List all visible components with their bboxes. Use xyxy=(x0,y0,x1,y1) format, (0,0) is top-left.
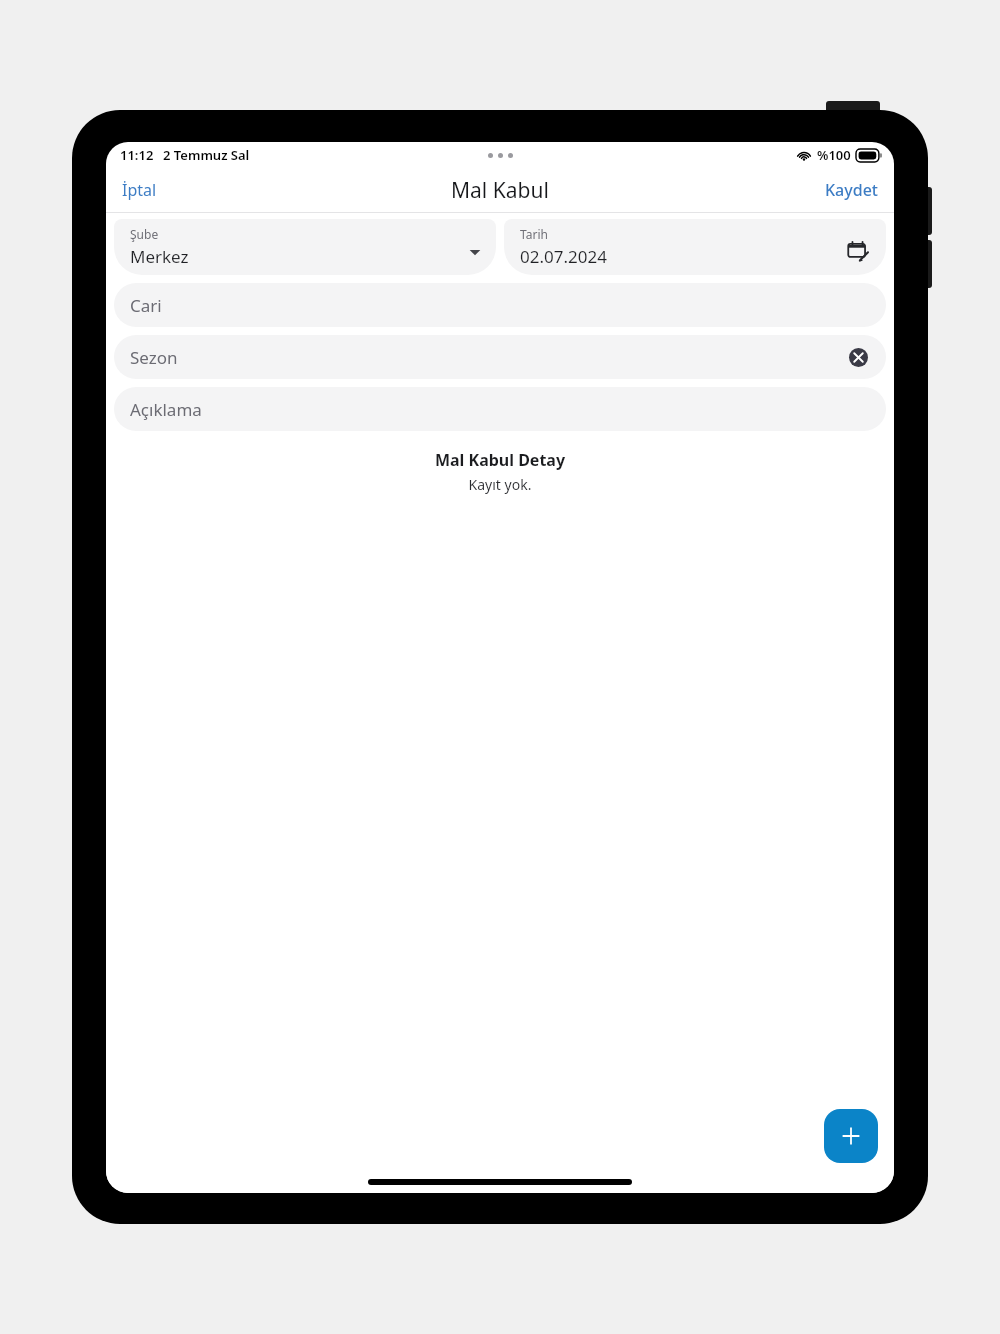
button[interactable]: Cari xyxy=(114,283,886,327)
button[interactable]: Kaydet xyxy=(809,171,894,209)
staticText: 2 Temmuz Sal xyxy=(163,146,250,164)
staticText: Şube xyxy=(130,226,159,242)
staticText: Mal Kabul Detay xyxy=(114,449,886,471)
button[interactable]: İptal xyxy=(106,171,173,209)
button[interactable]: Temizle xyxy=(844,343,872,371)
staticText: Kaydet xyxy=(825,179,878,201)
button[interactable]: Şube xyxy=(114,219,496,275)
staticText: Sezon xyxy=(130,346,178,369)
button[interactable]: Sezon xyxy=(114,335,886,379)
staticText: Merkez xyxy=(130,245,189,268)
staticText: İptal xyxy=(122,179,157,201)
staticText: Tarih xyxy=(520,226,548,242)
staticText: Açıklama xyxy=(130,398,202,421)
staticText: Mal Kabul xyxy=(451,176,549,205)
staticText: 02.07.2024 xyxy=(520,245,607,268)
button[interactable]: Tarih xyxy=(504,219,886,275)
button[interactable]: Ekle xyxy=(824,1109,878,1163)
staticText: 11:12 xyxy=(120,146,154,164)
button[interactable]: Açıklama xyxy=(114,387,886,431)
staticText: Cari xyxy=(130,294,162,317)
staticText: %100 xyxy=(817,146,851,164)
button[interactable]: Tarih seç xyxy=(842,236,872,266)
staticText: Kayıt yok. xyxy=(114,475,886,494)
